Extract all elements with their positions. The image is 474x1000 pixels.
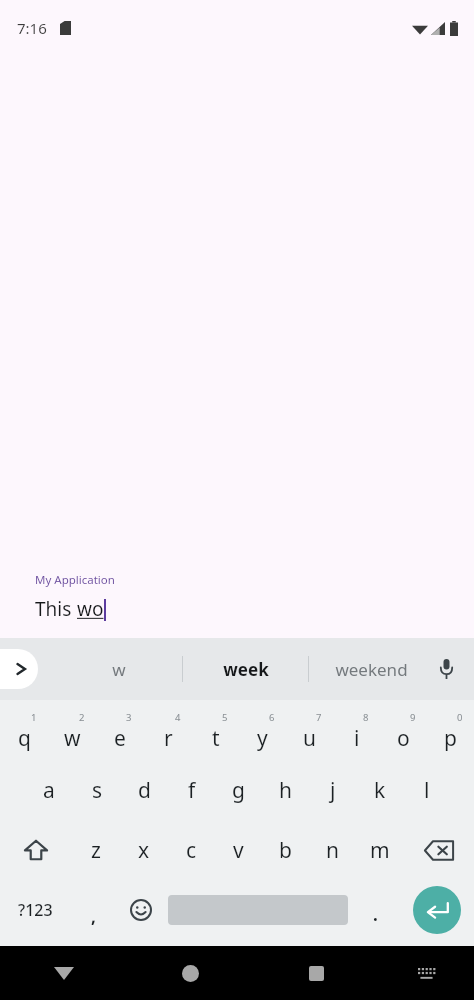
staticText: This: [35, 596, 77, 622]
staticText: x: [138, 836, 150, 865]
button[interactable]: 3: [96, 700, 144, 760]
button[interactable]: Recent apps: [253, 946, 379, 1000]
staticText: d: [138, 776, 151, 805]
button[interactable]: Home: [127, 946, 253, 1000]
staticText: s: [92, 776, 103, 805]
staticText: b: [279, 836, 292, 865]
staticText: 3: [126, 711, 132, 724]
button[interactable]: k: [356, 760, 403, 820]
button[interactable]: b: [262, 820, 309, 880]
staticText: My Application: [35, 572, 115, 588]
staticText: y: [257, 724, 268, 753]
button[interactable]: h: [262, 760, 309, 820]
staticText: c: [186, 836, 197, 865]
button[interactable]: w: [56, 649, 182, 689]
staticText: r: [164, 724, 173, 753]
staticText: n: [326, 836, 339, 865]
staticText: w: [112, 658, 126, 681]
button[interactable]: Shift: [0, 820, 72, 880]
button[interactable]: j: [309, 760, 356, 820]
staticText: wo: [77, 596, 104, 622]
button[interactable]: weekend: [309, 649, 434, 689]
staticText: 0: [457, 711, 463, 724]
staticText: v: [233, 836, 244, 865]
staticText: z: [91, 836, 101, 865]
button[interactable]: ,: [70, 880, 117, 940]
button[interactable]: f: [168, 760, 215, 820]
button[interactable]: 9: [380, 700, 427, 760]
staticText: j: [330, 776, 336, 805]
staticText: t: [212, 724, 220, 753]
staticText: g: [232, 776, 245, 805]
button[interactable]: ?123: [0, 880, 70, 940]
button[interactable]: Switch keyboard: [379, 946, 474, 1000]
staticText: 7: [316, 711, 322, 724]
button[interactable]: 6: [239, 700, 286, 760]
staticText: 9: [410, 711, 416, 724]
button[interactable]: Enter: [399, 880, 474, 940]
staticText: u: [303, 724, 316, 753]
staticText: 1: [31, 711, 37, 724]
button[interactable]: d: [121, 760, 168, 820]
button[interactable]: Voice input: [426, 649, 466, 689]
staticText: 2: [79, 711, 85, 724]
staticText: h: [279, 776, 292, 805]
button[interactable]: Emoji: [117, 880, 164, 940]
staticText: weekend: [335, 658, 408, 681]
button[interactable]: .: [352, 880, 399, 940]
button[interactable]: Hide keyboard: [0, 946, 127, 1000]
staticText: ,: [91, 905, 96, 928]
button[interactable]: 8: [333, 700, 380, 760]
button[interactable]: l: [403, 760, 450, 820]
button[interactable]: s: [73, 760, 121, 820]
button[interactable]: 5: [192, 700, 239, 760]
staticText: 7:16: [17, 18, 47, 38]
staticText: .: [373, 903, 378, 926]
button[interactable]: c: [168, 820, 215, 880]
button[interactable]: 4: [144, 700, 192, 760]
staticText: 5: [222, 711, 228, 724]
staticText: w: [64, 724, 81, 753]
staticText: l: [424, 776, 430, 805]
staticText: i: [354, 724, 360, 753]
staticText: 4: [175, 711, 181, 724]
staticText: 8: [363, 711, 369, 724]
button[interactable]: week: [183, 649, 308, 689]
button[interactable]: Backspace: [403, 820, 474, 880]
button[interactable]: 2: [48, 700, 96, 760]
staticText: week: [223, 658, 269, 681]
staticText: q: [18, 724, 31, 753]
button[interactable]: x: [120, 820, 168, 880]
staticText: f: [188, 776, 196, 805]
button[interactable]: v: [215, 820, 262, 880]
button[interactable]: 1: [0, 700, 48, 760]
button[interactable]: n: [309, 820, 356, 880]
staticText: ?123: [18, 899, 53, 921]
button[interactable]: 0: [427, 700, 474, 760]
button[interactable]: z: [72, 820, 120, 880]
staticText: o: [397, 724, 410, 753]
button[interactable]: m: [356, 820, 403, 880]
staticText: m: [370, 836, 390, 865]
button[interactable]: g: [215, 760, 262, 820]
staticText: k: [374, 776, 386, 805]
staticText: a: [43, 776, 55, 805]
button[interactable]: 7: [286, 700, 333, 760]
button[interactable]: a: [25, 760, 73, 820]
staticText: p: [444, 724, 457, 753]
staticText: e: [114, 724, 126, 753]
button[interactable]: Space: [164, 880, 352, 940]
button[interactable]: Expand toolbar: [0, 649, 38, 689]
staticText: 6: [269, 711, 275, 724]
